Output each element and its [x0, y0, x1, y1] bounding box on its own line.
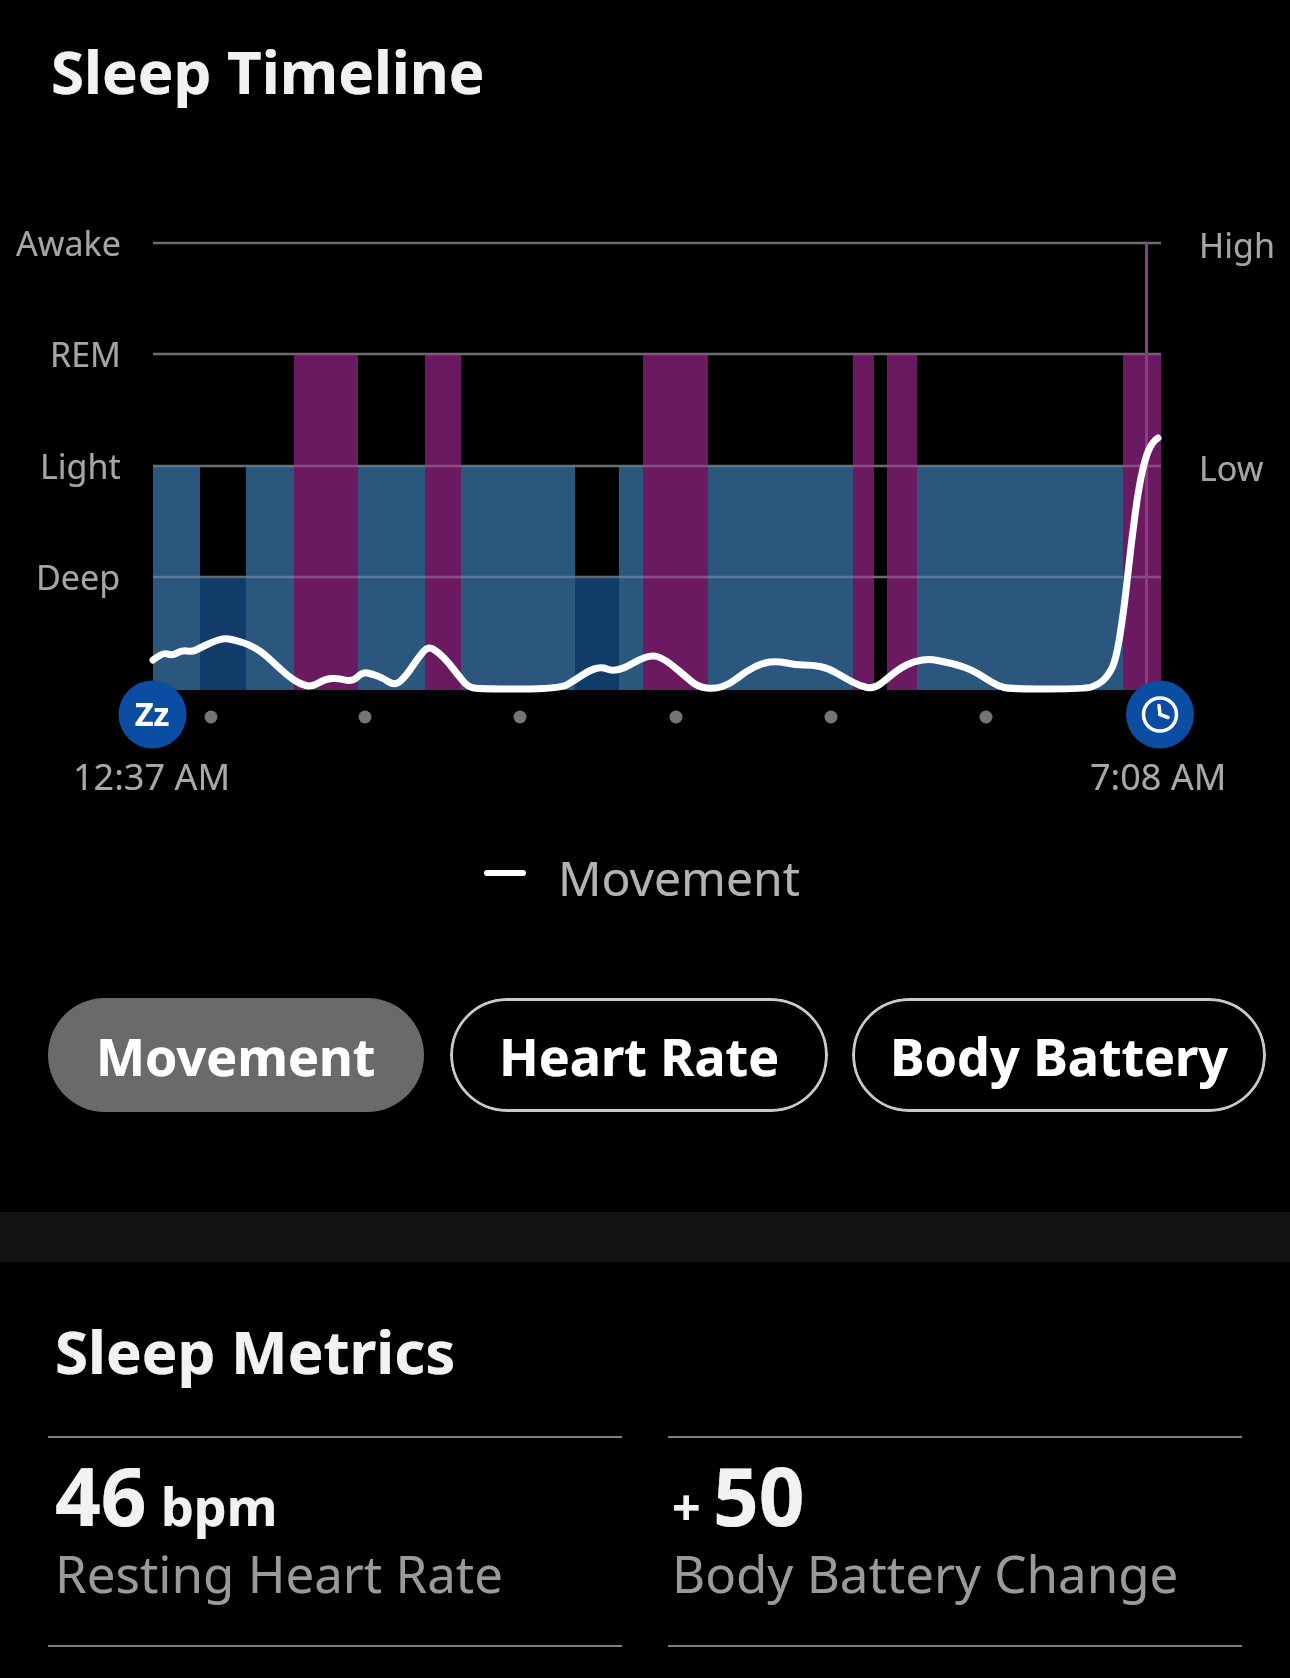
- button[interactable]: Movement: [48, 998, 424, 1112]
- staticText: Movement: [96, 1020, 376, 1091]
- staticText: Body Battery: [890, 1020, 1229, 1091]
- staticText: Low: [1199, 445, 1264, 491]
- staticText: Sleep Metrics: [55, 1310, 456, 1392]
- staticText: Light: [40, 443, 121, 489]
- staticText: Movement: [558, 845, 801, 910]
- staticText: Sleep Timeline: [51, 30, 485, 112]
- staticText: bpm: [161, 1470, 278, 1541]
- staticText: Body Battery Change: [672, 1538, 1179, 1607]
- staticText: Deep: [36, 554, 121, 600]
- staticText: High: [1199, 222, 1275, 268]
- staticText: 46: [55, 1440, 147, 1549]
- staticText: +: [672, 1473, 701, 1541]
- button[interactable]: Body Battery: [852, 998, 1266, 1112]
- staticText: Heart Rate: [499, 1020, 780, 1091]
- staticText: 7:08 AM: [1090, 752, 1227, 801]
- staticText: 12:37 AM: [73, 752, 231, 801]
- staticText: Resting Heart Rate: [55, 1538, 504, 1607]
- button[interactable]: Heart Rate: [450, 998, 828, 1112]
- staticText: 50: [713, 1440, 805, 1549]
- staticText: Zz: [135, 692, 170, 736]
- staticText: Awake: [16, 220, 121, 266]
- staticText: REM: [50, 331, 121, 377]
